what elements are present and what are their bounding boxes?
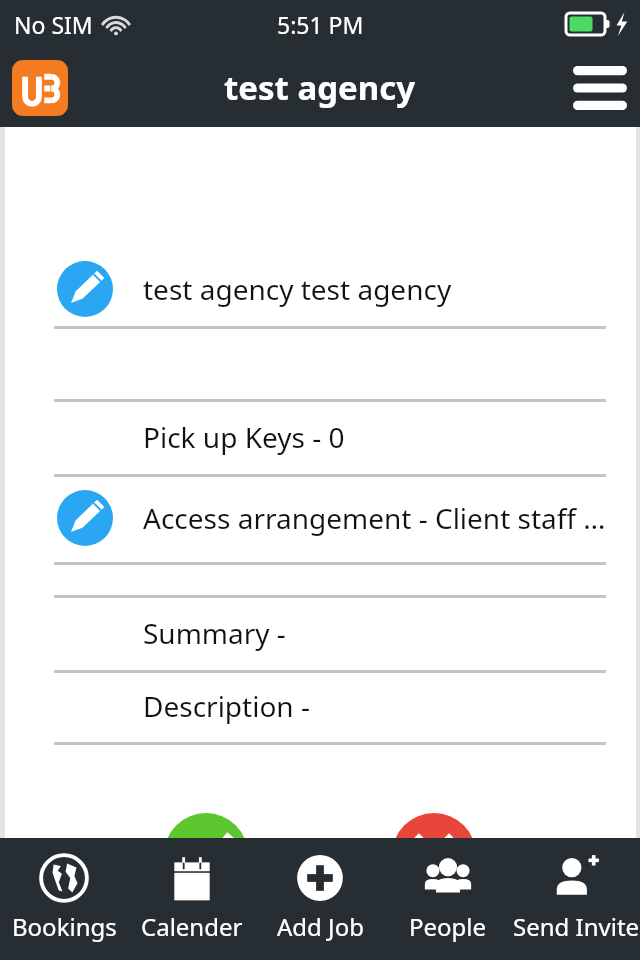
staticText: No SIM [14, 9, 93, 40]
staticText: Cancel [394, 907, 475, 942]
staticText: People [409, 910, 487, 943]
button[interactable]: Description - [0, 670, 640, 742]
button[interactable]: Add Job [256, 838, 384, 960]
staticText: Pick up Keys - 0 [143, 418, 345, 456]
staticText: test agency [224, 65, 416, 110]
staticText: Calender [141, 910, 243, 943]
button[interactable]: Save [158, 813, 254, 942]
button[interactable]: Send Invite [512, 838, 640, 960]
staticText: 5:51 PM [277, 9, 364, 40]
staticText: Description - [143, 687, 310, 725]
button[interactable]: Pick up Keys - 0 [0, 399, 640, 474]
staticText: Add Job [277, 910, 364, 943]
staticText: Send Invite [513, 910, 640, 943]
button[interactable]: Menu [568, 58, 632, 118]
button[interactable]: Bookings [0, 838, 128, 960]
staticText: Summary - [143, 614, 286, 652]
button[interactable]: Summary - [0, 595, 640, 670]
button[interactable]: Home [12, 60, 68, 116]
button[interactable]: People [384, 838, 512, 960]
staticText: test agency test agency [143, 270, 452, 308]
button[interactable]: test agency test agency [0, 251, 640, 326]
staticText: Save [178, 907, 235, 942]
button[interactable]: Calender [128, 838, 256, 960]
staticText: Bookings [12, 910, 117, 943]
button[interactable]: Cancel [386, 813, 482, 942]
button[interactable]: Access arrangement - Client staff … [0, 474, 640, 562]
staticText: Access arrangement - Client staff … [143, 499, 606, 537]
